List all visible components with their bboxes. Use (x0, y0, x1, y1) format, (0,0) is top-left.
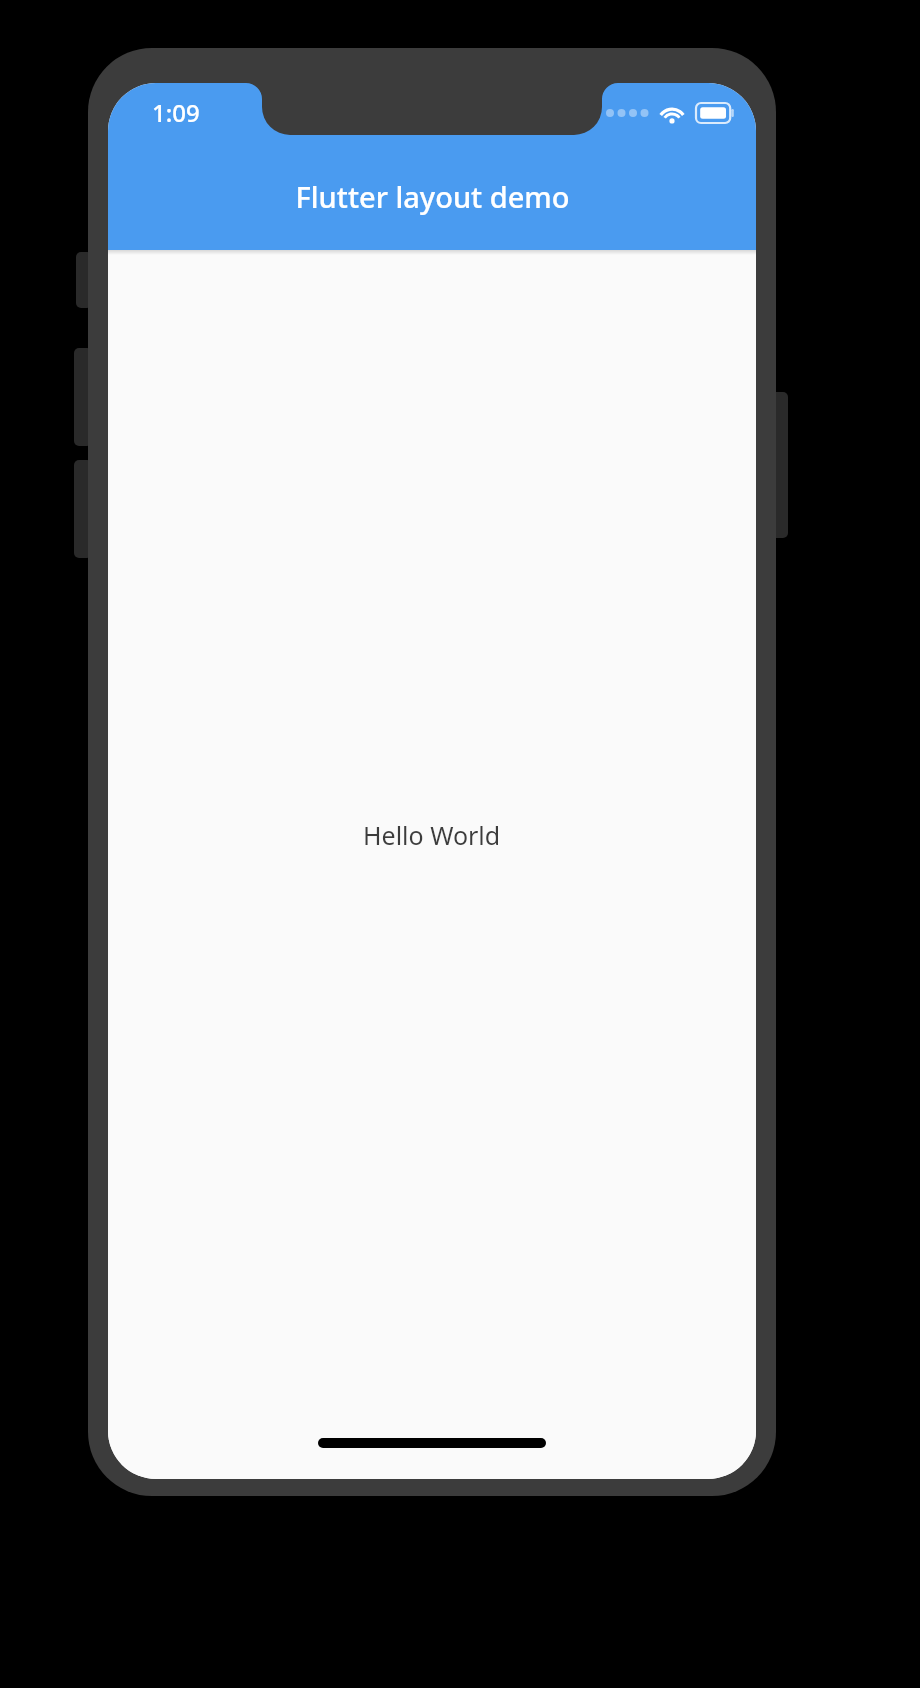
staticText: Flutter layout demo (295, 177, 570, 216)
button[interactable]: Home (318, 1438, 546, 1448)
staticText: Hello World (363, 818, 501, 852)
staticText: 1:09 (152, 96, 200, 129)
